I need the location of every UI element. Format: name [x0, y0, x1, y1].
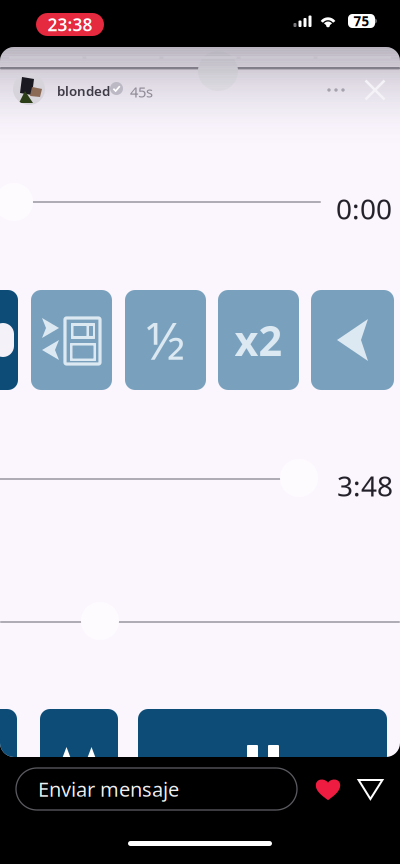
button[interactable]: Rewind 10 seconds	[40, 709, 118, 804]
button[interactable]: More options	[324, 78, 348, 102]
button[interactable]: Pause	[138, 709, 387, 804]
button[interactable]: Like	[315, 777, 341, 801]
button[interactable]: Enviar mensaje	[16, 768, 297, 810]
button[interactable]: Double speed	[218, 290, 299, 390]
staticText: Enviar mensaje	[38, 776, 179, 802]
button[interactable]: Save	[31, 290, 112, 390]
staticText: 75	[353, 12, 369, 30]
button[interactable]: Skip back	[0, 709, 17, 804]
staticText: 3:48	[337, 467, 393, 504]
staticText: 0:00	[336, 190, 392, 227]
button[interactable]: Previous	[0, 290, 18, 390]
button[interactable]: Close story	[362, 77, 388, 103]
button[interactable]: Half speed	[125, 290, 206, 390]
staticText: blonded	[57, 82, 110, 100]
staticText: 23:38	[47, 13, 92, 36]
staticText: x2	[234, 313, 282, 367]
button[interactable]: Send message	[357, 776, 384, 802]
button[interactable]: Rewind	[311, 290, 394, 390]
staticText: ½	[146, 306, 185, 374]
staticText: 45s	[130, 82, 153, 101]
